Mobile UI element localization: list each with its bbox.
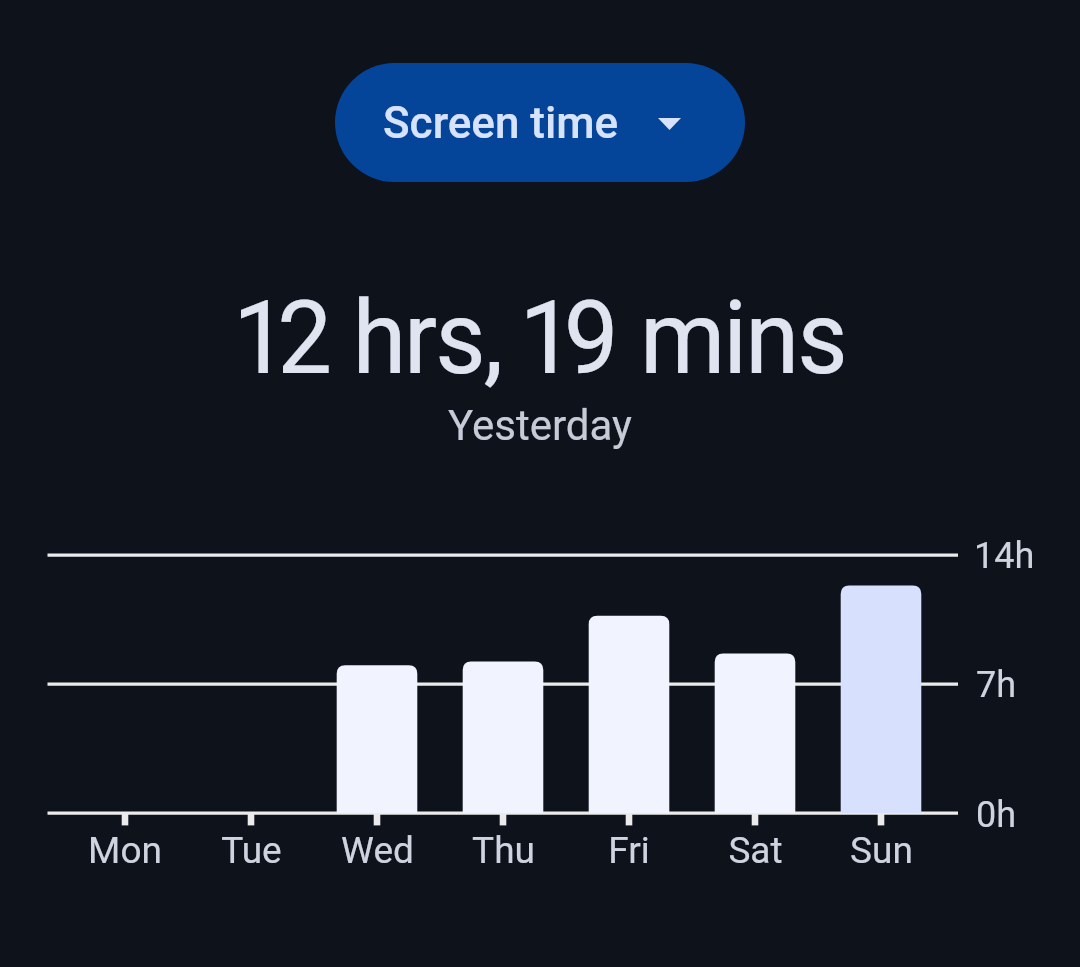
staticText: Screen time xyxy=(383,97,619,149)
button[interactable]: Thu xyxy=(440,555,566,813)
other: Change metric xyxy=(658,118,681,130)
staticText: 14h xyxy=(974,535,1035,577)
staticText: Yesterday xyxy=(0,401,1080,967)
staticText: Sat xyxy=(728,829,783,872)
staticText: 0h xyxy=(976,794,1017,836)
button[interactable]: Sun xyxy=(818,555,944,813)
staticText: Tue xyxy=(221,829,282,872)
staticText: Fri xyxy=(608,829,650,872)
staticText: Sun xyxy=(850,829,913,872)
staticText: Mon xyxy=(88,829,162,872)
staticText: 12 hrs, 19 mins xyxy=(1,278,1080,967)
button[interactable]: Fri xyxy=(566,555,692,813)
staticText: Thu xyxy=(472,829,535,872)
staticText: Wed xyxy=(341,829,414,872)
button[interactable]: Screen time xyxy=(335,63,745,182)
button[interactable]: Mon xyxy=(62,555,188,813)
button[interactable]: Wed xyxy=(314,555,440,813)
staticText: 7h xyxy=(976,664,1017,706)
button[interactable]: Sat xyxy=(692,555,818,813)
button[interactable]: Tue xyxy=(188,555,314,813)
